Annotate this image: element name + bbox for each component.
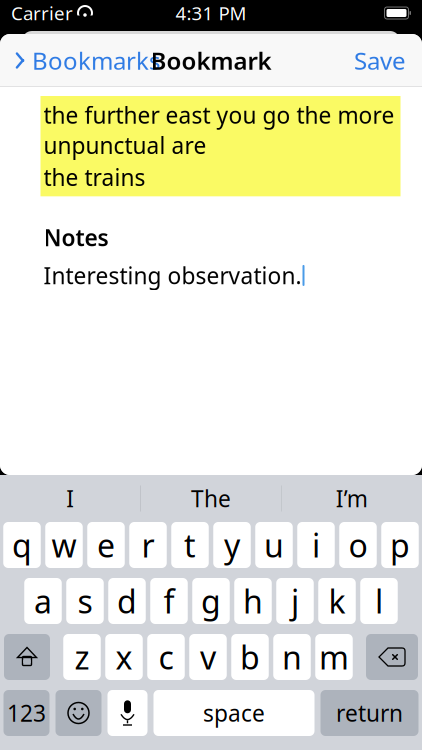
staticText: I’m (336, 483, 368, 513)
button[interactable]: Shift (4, 634, 50, 680)
button[interactable]: Emoji (55, 690, 101, 736)
button[interactable]: z (63, 634, 101, 680)
staticText: n (282, 636, 302, 678)
button[interactable]: 123 (3, 690, 49, 736)
button[interactable]: i (297, 522, 335, 568)
button[interactable]: x (105, 634, 143, 680)
button[interactable]: e (87, 522, 125, 568)
staticText: return (336, 698, 403, 728)
staticText: 4:31 PM (175, 1, 246, 25)
button[interactable]: y (213, 522, 251, 568)
button[interactable]: m (315, 634, 353, 680)
button[interactable]: p (381, 522, 419, 568)
staticText: t (184, 524, 196, 566)
staticText: y (224, 524, 240, 566)
staticText: m (319, 636, 349, 678)
staticText: Bookmarks (32, 45, 160, 76)
button[interactable]: v (189, 634, 227, 680)
staticText: z (74, 636, 89, 678)
staticText: c (158, 636, 173, 678)
staticText: f (163, 580, 174, 622)
staticText: h (243, 580, 263, 622)
button[interactable]: The (141, 475, 281, 522)
staticText: i (312, 524, 320, 566)
staticText: Save (354, 45, 406, 76)
button[interactable]: b (231, 634, 269, 680)
staticText: j (291, 580, 299, 622)
button[interactable]: Delete (366, 634, 418, 680)
button[interactable]: g (192, 578, 230, 624)
staticText: q (12, 524, 32, 566)
staticText: l (375, 580, 383, 622)
button[interactable]: d (108, 578, 146, 624)
button[interactable]: I (0, 475, 140, 522)
staticText: b (240, 636, 260, 678)
staticText: p (390, 524, 410, 566)
staticText: v (200, 636, 216, 678)
button[interactable]: a (24, 578, 62, 624)
button[interactable]: q (3, 522, 41, 568)
staticText: the trains (43, 162, 145, 192)
button[interactable]: Save (338, 38, 422, 82)
staticText: Notes (43, 222, 108, 252)
staticText: x (115, 636, 132, 678)
button[interactable]: I’m (282, 475, 422, 522)
staticText: The (191, 483, 231, 513)
button[interactable]: Dictate (107, 690, 147, 736)
button[interactable]: t (171, 522, 209, 568)
staticText: w (51, 524, 76, 566)
button[interactable]: return (320, 690, 418, 736)
button[interactable]: n (273, 634, 311, 680)
staticText: u (264, 524, 284, 566)
staticText: the further east you go the more unpunct… (43, 100, 394, 160)
button[interactable]: o (339, 522, 377, 568)
staticText: s (77, 580, 92, 622)
button[interactable]: u (255, 522, 293, 568)
button[interactable]: c (147, 634, 185, 680)
staticText: a (34, 580, 52, 622)
button[interactable]: r (129, 522, 167, 568)
button[interactable]: space (153, 690, 314, 736)
staticText: Bookmark (150, 45, 271, 76)
staticText: g (201, 580, 221, 622)
button[interactable]: j (276, 578, 314, 624)
staticText: Carrier (11, 1, 73, 25)
button[interactable]: l (360, 578, 398, 624)
button[interactable]: f (150, 578, 188, 624)
staticText: space (203, 698, 265, 728)
staticText: I (66, 483, 74, 513)
staticText: r (141, 524, 154, 566)
staticText: o (348, 524, 367, 566)
button[interactable]: k (318, 578, 356, 624)
staticText: 123 (7, 698, 46, 728)
staticText: Interesting observation. (43, 260, 301, 290)
staticText: k (328, 580, 345, 622)
button[interactable]: s (66, 578, 104, 624)
staticText: d (117, 580, 137, 622)
button[interactable]: Bookmarks (0, 38, 174, 82)
staticText: e (97, 524, 115, 566)
button[interactable]: h (234, 578, 272, 624)
button[interactable]: w (45, 522, 83, 568)
